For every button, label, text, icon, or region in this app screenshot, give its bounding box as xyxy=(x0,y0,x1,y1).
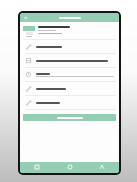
button[interactable]: Documents xyxy=(54,162,86,173)
button[interactable]: Home xyxy=(21,162,53,173)
button[interactable] xyxy=(23,114,116,121)
button[interactable]: Account xyxy=(86,162,118,173)
button[interactable] xyxy=(23,68,116,82)
button[interactable]: Back xyxy=(22,14,29,21)
button[interactable] xyxy=(23,96,116,110)
button[interactable] xyxy=(23,54,116,68)
button[interactable] xyxy=(23,24,116,39)
button[interactable] xyxy=(23,40,116,54)
button[interactable] xyxy=(23,82,116,96)
